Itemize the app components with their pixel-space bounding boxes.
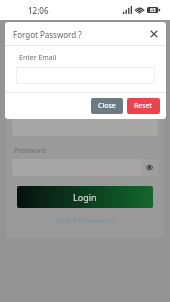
staticText: Login	[73, 191, 97, 203]
button[interactable]: Close	[91, 98, 123, 114]
staticText: Forgot Password ?	[55, 216, 116, 226]
button[interactable]: Reset	[127, 98, 160, 114]
staticText: Username/Email/Password	[14, 106, 103, 116]
staticText: Forgot Password ?	[13, 29, 82, 40]
staticText: Password	[14, 146, 46, 156]
button[interactable]	[16, 67, 155, 84]
button[interactable]: Show password	[12, 159, 158, 176]
staticText: Enter Email	[19, 53, 57, 63]
staticText: Reset	[134, 101, 153, 111]
staticText: 12:06	[28, 5, 49, 16]
button[interactable]: Show password	[141, 159, 158, 176]
staticText: 63	[150, 7, 156, 14]
button[interactable]: Login	[17, 186, 153, 208]
button[interactable]: Close dialog	[148, 28, 160, 40]
button[interactable]: Forgot Password ?	[53, 214, 118, 228]
staticText: Close	[98, 101, 116, 111]
